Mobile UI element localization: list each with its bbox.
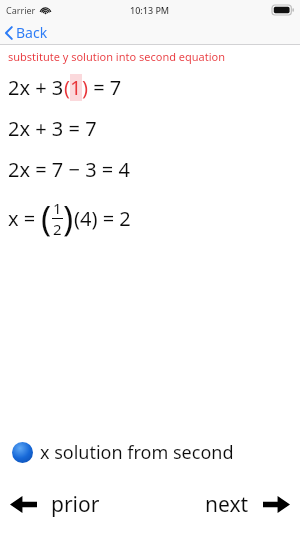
- other: prior: [10, 496, 37, 513]
- staticText: 1: [53, 198, 62, 218]
- staticText: (: [64, 74, 70, 101]
- staticText: (4) = 2: [74, 205, 131, 232]
- staticText: ): [82, 74, 88, 101]
- staticText: 2x + 3: [8, 74, 64, 101]
- staticText: x =: [8, 205, 41, 232]
- button[interactable]: prior: [0, 490, 150, 519]
- staticText: 2x + 3 = 7: [8, 115, 97, 142]
- staticText: 2x = 7 − 3 = 4: [8, 156, 130, 183]
- staticText: Back: [16, 23, 48, 42]
- staticText: 2: [53, 219, 62, 239]
- staticText: substitute y solution into second equati…: [8, 49, 226, 64]
- staticText: x solution from second: [40, 440, 234, 465]
- button[interactable]: Back: [0, 21, 56, 44]
- staticText: = 7: [88, 74, 122, 101]
- staticText: (: [41, 195, 52, 241]
- staticText: prior: [51, 490, 100, 519]
- button[interactable]: x solution from second: [0, 436, 300, 469]
- staticText: ): [63, 195, 74, 241]
- other: next: [263, 496, 290, 513]
- staticText: 1: [70, 74, 82, 101]
- staticText: Carrier: [6, 4, 36, 16]
- staticText: next: [205, 490, 249, 519]
- button[interactable]: next: [150, 490, 300, 519]
- staticText: 10:13 PM: [130, 4, 170, 16]
